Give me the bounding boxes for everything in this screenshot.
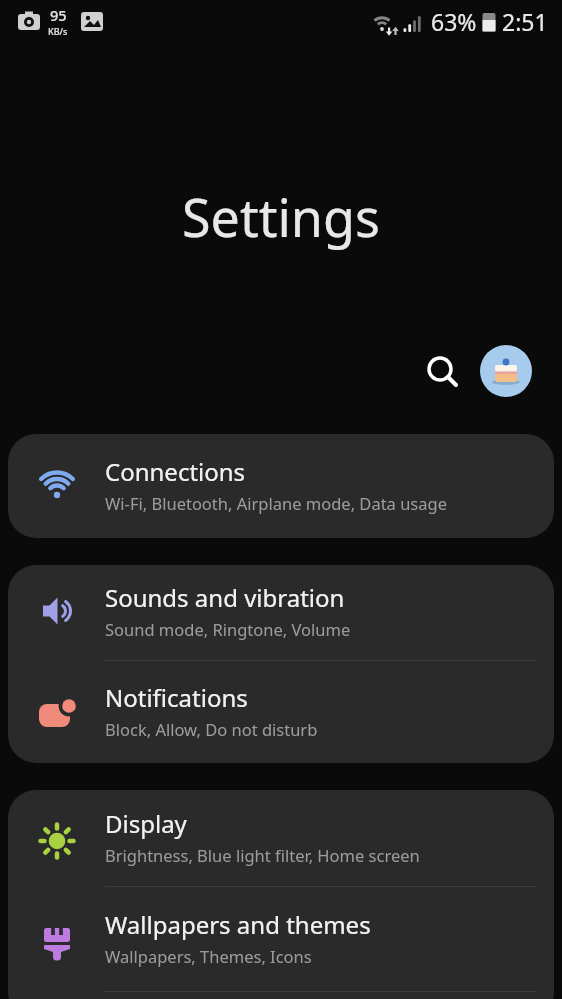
staticText: 95 xyxy=(50,5,67,25)
staticText: Wallpapers and themes xyxy=(105,908,371,941)
staticText: Wi-Fi, Bluetooth, Airplane mode, Data us… xyxy=(105,492,447,514)
staticText: Wallpapers, Themes, Icons xyxy=(105,945,312,967)
staticText: KB/s xyxy=(48,25,68,37)
staticText: Sound mode, Ringtone, Volume xyxy=(105,618,351,640)
button[interactable]: Sounds and vibration xyxy=(8,565,554,660)
staticText: Settings xyxy=(182,181,380,252)
button[interactable]: Wallpapers and themes xyxy=(8,887,554,991)
staticText: Notifications xyxy=(105,681,248,714)
staticText: 63% xyxy=(431,6,477,37)
staticText: Block, Allow, Do not disturb xyxy=(105,718,318,740)
button[interactable]: Connections xyxy=(8,434,554,538)
staticText: Connections xyxy=(105,455,246,488)
button[interactable] xyxy=(480,345,532,397)
button[interactable]: Notifications xyxy=(8,661,554,763)
staticText: Sounds and vibration xyxy=(105,581,345,614)
button[interactable] xyxy=(420,349,464,393)
staticText: Display xyxy=(105,807,187,840)
button[interactable]: Display xyxy=(8,790,554,886)
staticText: 2:51 xyxy=(502,6,548,37)
staticText: Brightness, Blue light filter, Home scre… xyxy=(105,844,420,866)
